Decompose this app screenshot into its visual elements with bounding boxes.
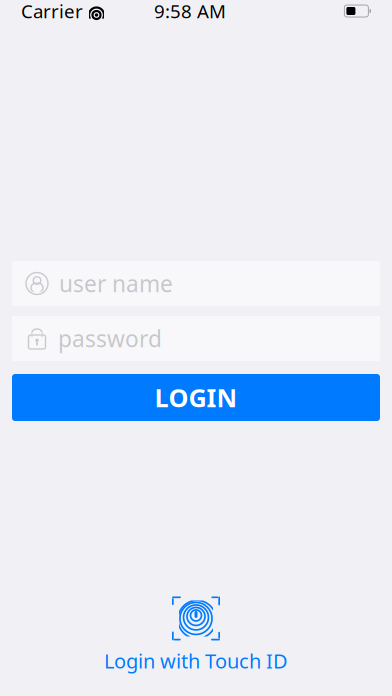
staticText: Carrier [21,0,83,23]
button[interactable]: password [12,316,380,361]
button[interactable]: Login with Touch ID [86,592,306,678]
button[interactable]: LOGIN [12,374,380,421]
staticText: password [58,323,162,353]
staticText: LOGIN [154,381,237,414]
staticText: user name [59,268,173,298]
staticText: Login with Touch ID [104,647,288,674]
button[interactable]: user name [12,261,380,306]
staticText: 9:58 AM [154,0,226,23]
